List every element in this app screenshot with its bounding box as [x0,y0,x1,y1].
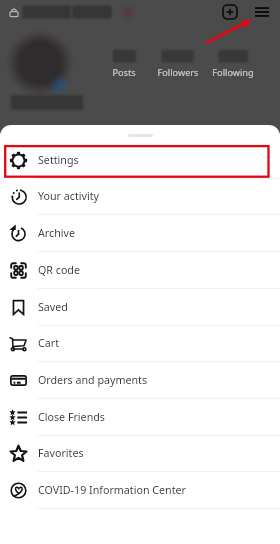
staticText: Followers [138,66,218,79]
staticText: Saved [38,300,68,315]
staticText: Cart [38,336,60,351]
staticText: Your activity [38,189,100,204]
staticText: Orders and payments [38,373,148,388]
button[interactable]: QR code [0,252,280,289]
button[interactable]: Archive [0,215,280,252]
button[interactable]: Menu [255,5,269,19]
button[interactable]: New post [223,5,237,19]
staticText: Close Friends [38,410,105,425]
button[interactable]: Favorites [0,435,280,472]
button[interactable]: Settings [0,142,280,179]
staticText: Favorites [38,446,84,461]
staticText: Archive [38,226,75,241]
staticText: QR code [38,263,80,278]
button[interactable]: Your activity [0,178,280,215]
staticText: Posts [84,66,164,79]
staticText: Following [193,66,273,79]
button[interactable]: Close Friends [0,399,280,436]
button[interactable]: Orders and payments [0,362,280,399]
staticText: COVID-19 Information Center [38,483,186,498]
button[interactable]: COVID-19 Information Center [0,472,280,509]
button[interactable]: Cart [0,325,280,362]
button[interactable]: Saved [0,289,280,326]
staticText: Settings [38,153,79,168]
